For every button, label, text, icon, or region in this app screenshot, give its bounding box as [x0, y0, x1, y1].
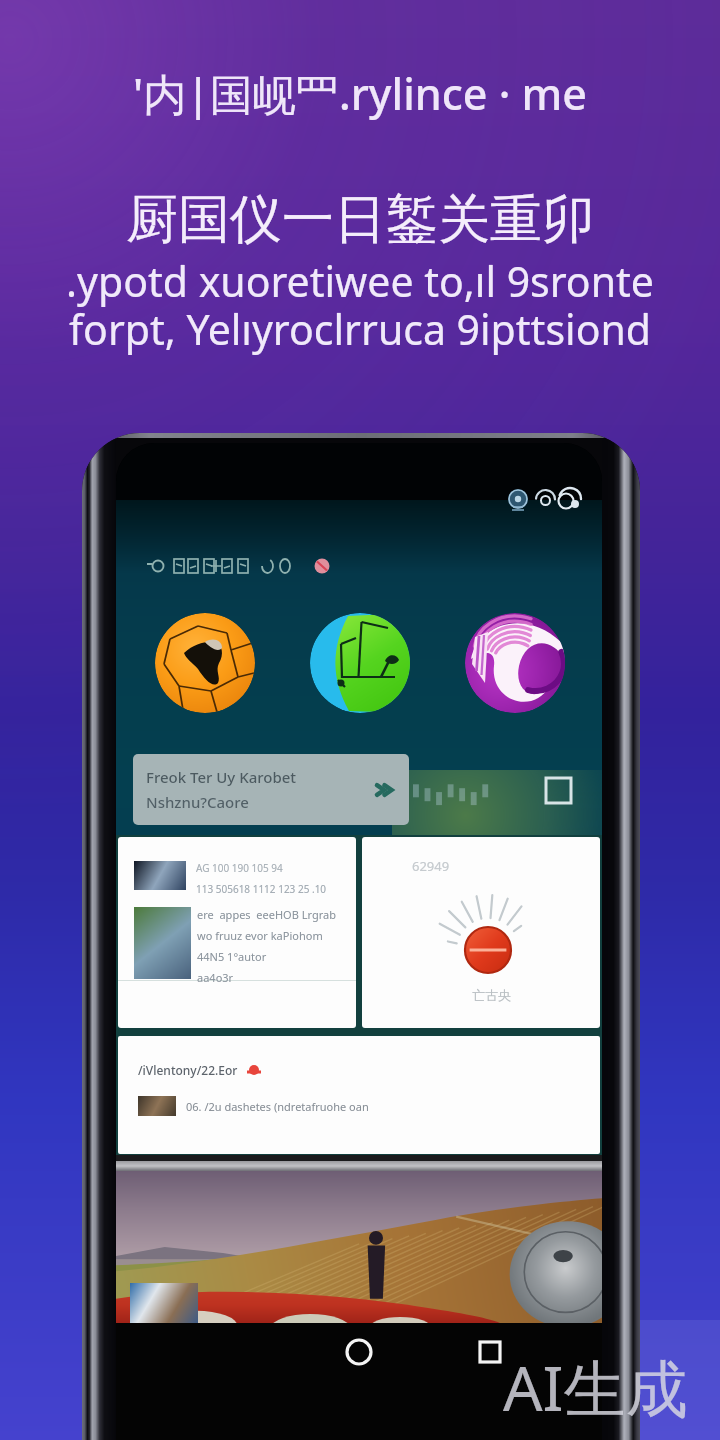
- staticText: Freok Ter Uy Karobet: [146, 767, 297, 787]
- staticText: forpt, Yelıyroclrruca 9ipttsiond: [0, 301, 720, 357]
- staticText: 44N5 1°autor: [197, 949, 267, 964]
- button[interactable]: App icon 1: [155, 613, 255, 713]
- staticText: 62949: [412, 857, 450, 875]
- staticText: 厨国仪一日錾关重卯: [0, 187, 720, 253]
- staticText: wo fruuz evor kaPiohom: [197, 928, 323, 943]
- button[interactable]: App icon 3: [465, 613, 565, 713]
- staticText: /iVlentony/22.Eor: [138, 1062, 238, 1078]
- staticText: ere appes eeeHOB Lrgrab: [197, 907, 336, 922]
- button[interactable]: Recents: [470, 1332, 510, 1372]
- staticText: AG 100 190 105 94: [196, 861, 283, 875]
- button[interactable]: Home: [339, 1332, 379, 1372]
- button[interactable]: [116, 1171, 602, 1323]
- staticText: Nshznu?Caore: [146, 792, 249, 812]
- staticText: 06. /2u dashetes (ndretafruohe oan: [186, 1099, 369, 1114]
- staticText: 亡古央: [472, 987, 511, 1003]
- staticText: '内|国岘罒.rylince · me: [0, 64, 720, 123]
- staticText: 113 505618 1112 123 25 .10: [196, 882, 327, 896]
- button[interactable]: /iVlentony/22.Eor: [118, 1036, 600, 1154]
- other: Forward: [373, 779, 395, 801]
- button[interactable]: AG 100 190 105 94: [118, 837, 356, 1028]
- button[interactable]: Freok Ter Uy Karobet: [133, 754, 409, 825]
- button[interactable]: App icon 2: [310, 613, 410, 713]
- button[interactable]: Select: [546, 778, 571, 803]
- staticText: .ypotd xuoretiwee to,ıl 9sronte: [0, 253, 720, 309]
- staticText: aa4o3r: [197, 970, 234, 985]
- staticText: AI生成: [503, 1345, 688, 1430]
- button[interactable]: 62949: [362, 837, 600, 1028]
